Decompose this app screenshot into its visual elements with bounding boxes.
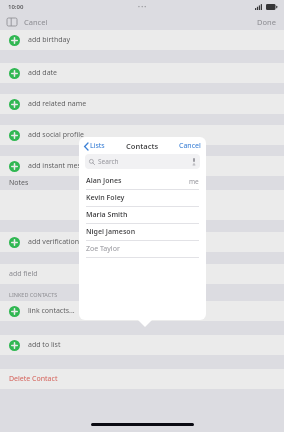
button[interactable]: add instant message bbox=[0, 156, 284, 176]
staticText: add instant message bbox=[28, 161, 97, 171]
button[interactable]: add field bbox=[0, 264, 284, 284]
button[interactable]: add related name bbox=[0, 94, 284, 114]
staticText: Cancel bbox=[179, 141, 201, 151]
staticText: • • • bbox=[138, 4, 147, 11]
button[interactable]: Toggle sidebar bbox=[7, 18, 17, 26]
other: Dictate bbox=[192, 158, 196, 165]
staticText: add to list bbox=[28, 340, 61, 350]
button[interactable]: add social profile bbox=[0, 125, 284, 145]
button[interactable]: Nigel Jameson bbox=[79, 224, 206, 240]
staticText: Alan Jones bbox=[86, 176, 122, 186]
button[interactable]: Alan Jones bbox=[79, 173, 206, 189]
button[interactable]: add birthday bbox=[0, 30, 284, 50]
staticText: Cancel bbox=[24, 17, 48, 27]
staticText: Kevin Foley bbox=[86, 193, 125, 203]
staticText: add related name bbox=[28, 99, 87, 109]
button[interactable]: Lists bbox=[84, 141, 105, 151]
staticText: add birthday bbox=[28, 35, 71, 45]
button[interactable]: Search bbox=[85, 154, 200, 169]
staticText: me bbox=[189, 177, 199, 186]
staticText: add field bbox=[9, 269, 38, 279]
staticText: add verification code bbox=[28, 237, 97, 247]
staticText: link contacts... bbox=[28, 306, 75, 316]
button[interactable]: Zoe Taylor bbox=[79, 241, 206, 257]
button[interactable]: add verification code bbox=[0, 232, 284, 252]
button[interactable]: Maria Smith bbox=[79, 207, 206, 223]
staticText: add date bbox=[28, 68, 58, 78]
button[interactable]: add date bbox=[0, 63, 284, 83]
button[interactable]: Done bbox=[257, 17, 276, 27]
button[interactable]: Delete Contact bbox=[0, 369, 284, 389]
staticText: Delete Contact bbox=[9, 374, 58, 384]
button[interactable]: link contacts... bbox=[0, 301, 284, 321]
button[interactable]: Kevin Foley bbox=[79, 190, 206, 206]
staticText: Maria Smith bbox=[86, 210, 128, 220]
button[interactable]: add to list bbox=[0, 335, 284, 355]
staticText: LINKED CONTACTS bbox=[9, 291, 58, 298]
staticText: Search bbox=[98, 157, 119, 166]
staticText: Nigel Jameson bbox=[86, 227, 136, 237]
staticText: Zoe Taylor bbox=[86, 244, 120, 254]
staticText: add social profile bbox=[28, 130, 84, 140]
staticText: Contacts bbox=[126, 141, 159, 151]
staticText: Done bbox=[257, 17, 276, 27]
staticText: Notes bbox=[9, 178, 29, 188]
staticText: 10:00 bbox=[8, 3, 24, 11]
button[interactable]: Cancel bbox=[24, 17, 48, 27]
staticText: Lists bbox=[90, 141, 105, 151]
button[interactable]: Cancel bbox=[179, 141, 201, 151]
